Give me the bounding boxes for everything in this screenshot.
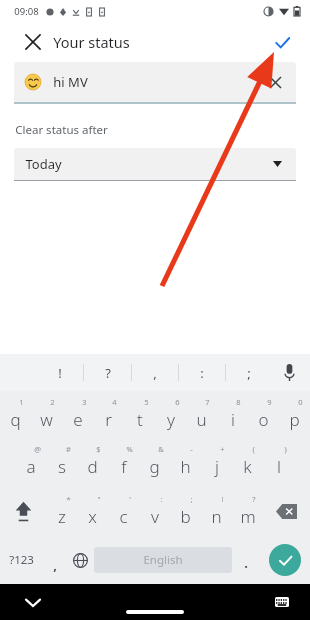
button[interactable]: Clear text — [263, 70, 287, 94]
staticText: 2 — [50, 397, 55, 407]
staticText: ! — [221, 494, 224, 504]
button[interactable]: Close — [20, 29, 46, 55]
button[interactable]: Enter — [269, 544, 301, 576]
button[interactable]: 5 — [124, 391, 155, 436]
staticText: h — [180, 455, 191, 478]
staticText: 3 — [82, 397, 87, 407]
staticText: @ — [34, 444, 41, 454]
button[interactable]: Hide keyboard — [20, 589, 46, 615]
staticText: hi MV — [53, 73, 88, 91]
button[interactable]: ' — [108, 486, 139, 536]
staticText: i — [231, 408, 235, 431]
staticText: q — [10, 408, 21, 431]
staticText: r — [105, 408, 112, 431]
staticText: ? — [252, 494, 256, 504]
button[interactable]: Voice input — [272, 354, 306, 391]
staticText: z — [58, 505, 66, 528]
button[interactable]: + — [201, 436, 232, 486]
button[interactable]: Switch keyboard — [270, 590, 294, 614]
staticText: 0 — [298, 397, 303, 407]
staticText: b — [180, 505, 191, 528]
staticText: # — [66, 444, 71, 454]
staticText: 5 — [144, 397, 149, 407]
button[interactable]: " — [77, 486, 108, 536]
staticText: ; — [190, 494, 193, 504]
button[interactable]: ! — [36, 354, 83, 391]
staticText: - — [190, 444, 193, 454]
button[interactable]: 1 — [0, 391, 31, 436]
staticText: 1 — [19, 397, 24, 407]
staticText: 09:08 — [14, 5, 39, 18]
button[interactable]: 4 — [93, 391, 124, 436]
button[interactable]: ?123 — [0, 536, 43, 584]
staticText: ?123 — [9, 552, 34, 568]
staticText: c — [119, 505, 128, 528]
staticText: 4 — [112, 397, 117, 407]
button[interactable]: 6 — [155, 391, 186, 436]
button[interactable]: 7 — [186, 391, 217, 436]
button[interactable]: : — [139, 486, 170, 536]
staticText: % — [126, 444, 133, 454]
staticText: ? — [105, 364, 111, 382]
button[interactable]: Today — [14, 148, 296, 180]
staticText: $ — [96, 444, 101, 454]
staticText: , — [153, 364, 157, 382]
button[interactable]: English — [94, 547, 232, 573]
button[interactable]: Change language — [67, 536, 94, 584]
staticText: 6 — [175, 397, 180, 407]
button[interactable]: , — [43, 536, 67, 584]
button[interactable]: % — [108, 436, 139, 486]
button[interactable]: , — [132, 354, 178, 391]
button[interactable]: Save status — [268, 28, 296, 56]
button[interactable]: 0 — [279, 391, 310, 436]
button[interactable]: . — [232, 536, 259, 584]
button[interactable]: ! — [201, 486, 232, 536]
staticText: : — [200, 364, 204, 382]
staticText: Your status — [53, 32, 130, 52]
staticText: x — [88, 505, 97, 528]
button[interactable]: - — [170, 436, 201, 486]
staticText: Clear status after — [15, 122, 108, 138]
button[interactable]: hi MV — [14, 62, 296, 102]
button[interactable]: ; — [226, 354, 272, 391]
staticText: * — [66, 494, 71, 504]
button[interactable]: : — [179, 354, 225, 391]
staticText: ) — [284, 444, 287, 454]
staticText: , — [53, 556, 57, 574]
staticText: u — [196, 408, 207, 431]
staticText: k — [243, 455, 252, 478]
button[interactable]: 8 — [217, 391, 248, 436]
staticText: & — [158, 444, 164, 454]
button[interactable]: $ — [77, 436, 108, 486]
staticText: d — [87, 455, 98, 478]
button[interactable]: ) — [263, 436, 294, 486]
button[interactable]: & — [139, 436, 170, 486]
staticText: + — [220, 444, 225, 454]
staticText: v — [151, 505, 159, 528]
staticText: m — [240, 505, 256, 528]
button[interactable]: Backspace — [263, 486, 310, 536]
staticText: ; — [247, 364, 251, 382]
button[interactable]: 3 — [62, 391, 93, 436]
staticText: s — [58, 455, 66, 478]
staticText: y — [167, 408, 175, 431]
staticText: . — [244, 554, 248, 572]
button[interactable]: * — [46, 486, 77, 536]
staticText: o — [258, 408, 269, 431]
staticText: n — [211, 505, 222, 528]
button[interactable]: # — [46, 436, 77, 486]
button[interactable]: ? — [84, 354, 131, 391]
button[interactable]: ? — [232, 486, 263, 536]
button[interactable]: 2 — [31, 391, 62, 436]
staticText: g — [149, 455, 160, 478]
button[interactable]: Shift — [0, 486, 46, 536]
button[interactable]: 9 — [248, 391, 279, 436]
button[interactable]: ; — [170, 486, 201, 536]
staticText: Today — [25, 155, 62, 173]
button[interactable]: @ — [15, 436, 46, 486]
staticText: t — [137, 408, 143, 431]
staticText: " — [97, 494, 101, 504]
button[interactable]: ( — [232, 436, 263, 486]
staticText: a — [26, 455, 36, 478]
staticText: ( — [252, 444, 255, 454]
